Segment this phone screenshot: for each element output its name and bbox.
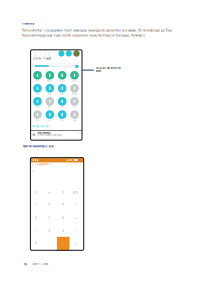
staticText: 10:02 [75, 132, 79, 134]
staticText: 170 [24, 263, 28, 266]
staticText: ÷ [75, 203, 77, 207]
staticText: 2 [48, 229, 50, 233]
staticText: 8 [48, 203, 50, 207]
staticText: Көз [61, 106, 64, 108]
staticText: Wi-Fi [35, 80, 39, 82]
staticText: 7 [35, 203, 37, 207]
staticText: Жүйені жаңарту аяқталды [37, 134, 61, 137]
staticText: Үнсіз [72, 106, 76, 108]
staticText: NFC [48, 106, 51, 108]
staticText: − [75, 229, 77, 233]
staticText: 4 [35, 216, 37, 220]
staticText: 1 [35, 229, 36, 233]
staticText: Режим [72, 93, 77, 95]
staticText: Тарих пен калькуляторды ашуы [22, 145, 54, 148]
staticText: Бұру [60, 93, 64, 95]
staticText: = [62, 241, 64, 245]
staticText: Жазу [35, 119, 39, 121]
staticText: +/- [47, 191, 51, 194]
staticText: DEL [73, 191, 79, 194]
staticText: Хот [48, 119, 51, 121]
staticText: Калькуляторды ашу үшін негізгі экраннан … [22, 34, 146, 37]
staticText: Дыбыс [47, 80, 52, 82]
staticText: панелі [95, 69, 101, 72]
staticText: Тема [72, 119, 76, 121]
staticText: + [75, 241, 77, 245]
staticText: 9 [62, 203, 64, 207]
staticText: Жылдам параметрлер [95, 67, 121, 70]
staticText: % [61, 191, 64, 194]
staticText: 5 [48, 216, 50, 220]
staticText: × [75, 216, 77, 220]
staticText: ⋮ [79, 162, 82, 166]
staticText: Қуат [60, 119, 64, 121]
staticText: settings.more.info [32, 125, 49, 128]
staticText: 6 [62, 216, 64, 220]
staticText: Калькулятор [37, 163, 51, 166]
staticText: Ұялы байланыс [37, 132, 51, 134]
staticText: Сабақ 10. Дыбыс [32, 263, 48, 265]
staticText: Ұшақ [48, 93, 52, 95]
staticText: Калькулятор [22, 22, 34, 25]
staticText: Deg [31, 170, 34, 172]
staticText: Калькулятор – сандармен түрлі амалдар ор… [22, 29, 173, 32]
staticText: C [35, 191, 37, 194]
staticText: 3 [62, 229, 64, 233]
staticText: Дүйсенбі, 14 мамыр [33, 58, 51, 60]
staticText: Фонарь [71, 80, 77, 82]
staticText: 0 [35, 241, 37, 245]
staticText: ‹ [32, 162, 34, 167]
staticText: Дерек [60, 80, 65, 82]
staticText: 03:38 [33, 50, 51, 59]
staticText: Орын [35, 93, 39, 95]
